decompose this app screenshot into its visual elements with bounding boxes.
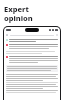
staticText: Expert opinion — [4, 4, 33, 23]
button[interactable]: Back — [4, 27, 60, 100]
button[interactable]: Back — [6, 34, 8, 36]
button[interactable] — [7, 66, 57, 71]
